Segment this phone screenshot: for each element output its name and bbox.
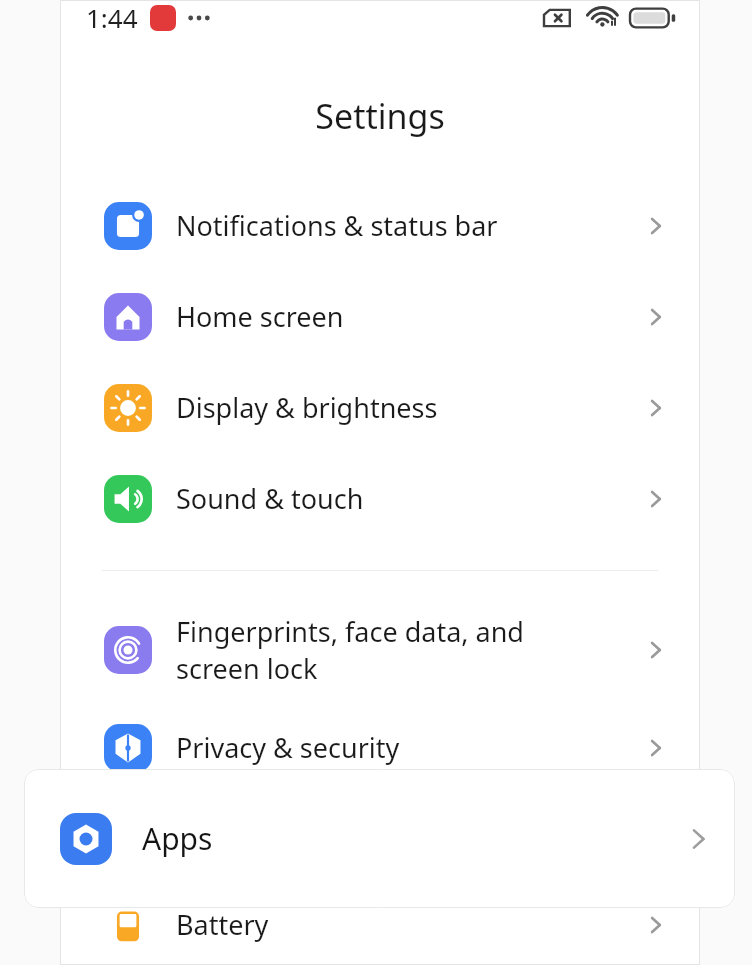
button[interactable]: Display & brightness — [60, 362, 700, 453]
button[interactable]: Battery — [60, 884, 700, 965]
staticText: 1:44 — [86, 0, 138, 35]
staticText: Apps — [142, 818, 213, 859]
button[interactable]: Privacy & security — [60, 702, 700, 793]
staticText: Battery — [176, 906, 604, 943]
button[interactable]: Home screen — [60, 271, 700, 362]
button[interactable]: Apps — [60, 793, 700, 884]
staticText: Notifications & status bar — [176, 207, 604, 244]
staticText: Sound & touch — [176, 480, 604, 517]
staticText: Privacy & security — [176, 729, 604, 766]
staticText: Settings — [315, 93, 445, 139]
staticText: Display & brightness — [176, 389, 604, 426]
button[interactable]: Fingerprints, face data, and screen lock — [60, 597, 700, 702]
staticText: Fingerprints, face data, and screen lock — [176, 613, 604, 687]
staticText: Home screen — [176, 298, 604, 335]
button[interactable]: Notifications & status bar — [60, 180, 700, 271]
staticText: Apps — [176, 820, 604, 857]
other: Open Apps — [684, 823, 716, 855]
button[interactable]: Sound & touch — [60, 453, 700, 544]
button[interactable]: Apps — [24, 769, 735, 908]
